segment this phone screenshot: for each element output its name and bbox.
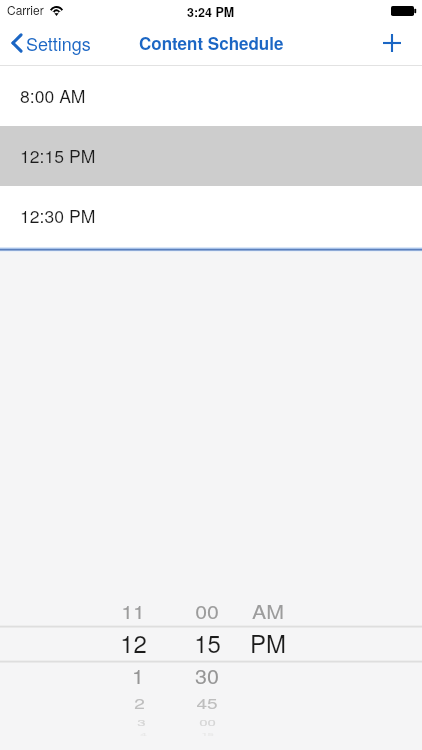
staticText: 12:15 PM (20, 143, 96, 168)
button[interactable]: Settings (0, 25, 101, 61)
staticText: 00 (195, 598, 219, 625)
staticText: 11 (121, 598, 145, 625)
staticText: 15 (194, 625, 221, 659)
staticText: PM (250, 625, 286, 659)
staticText: 3 (137, 718, 146, 728)
staticText: 4 (140, 732, 147, 736)
staticText: 12:30 PM (20, 203, 96, 228)
staticText: 15 (201, 732, 214, 736)
button[interactable]: 12:15 PM (0, 126, 422, 186)
staticText: 00 (199, 718, 216, 728)
button[interactable]: Add (371, 27, 422, 59)
staticText: AM (252, 598, 284, 625)
staticText: 12 (120, 625, 147, 659)
staticText: 30 (195, 661, 219, 689)
button[interactable]: 12:30 PM (0, 186, 422, 247)
staticText: Carrier (7, 1, 44, 18)
staticText: 3:24 PM (187, 3, 235, 21)
staticText: 8:00 AM (20, 83, 86, 108)
staticText: 45 (196, 692, 218, 713)
staticText: 2 (134, 692, 145, 713)
staticText: 1 (132, 661, 144, 689)
button[interactable]: 8:00 AM (0, 66, 422, 126)
staticText: Content Schedule (139, 31, 284, 55)
staticText: Settings (26, 30, 91, 56)
